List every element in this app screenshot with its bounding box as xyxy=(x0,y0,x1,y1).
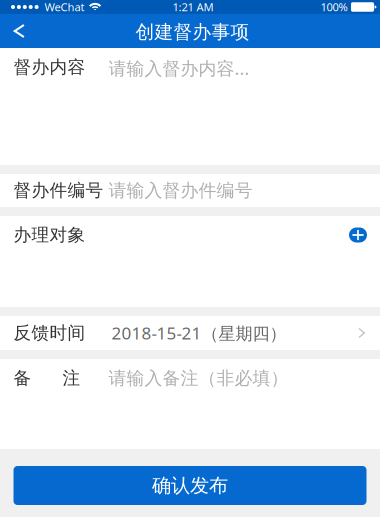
button[interactable]: 确认发布 xyxy=(13,466,366,505)
staticText: WeChat xyxy=(45,0,85,15)
staticText: 备 xyxy=(13,367,31,389)
staticText: 督办件编号 xyxy=(13,179,103,202)
staticText: 2018-15-21（星期四） xyxy=(111,321,286,345)
staticText: 1:21 AM xyxy=(172,0,213,15)
staticText: 督办内容 xyxy=(13,56,85,78)
staticText: 请输入督办件编号 xyxy=(108,179,252,202)
button[interactable]: 反馈时间 xyxy=(0,316,380,350)
staticText: 请输入备注（非必填） xyxy=(108,367,288,389)
staticText: 100% xyxy=(320,0,347,15)
button[interactable]: 添加办理对象 xyxy=(345,223,371,246)
button[interactable]: Back xyxy=(0,14,48,48)
staticText: 创建督办事项 xyxy=(135,20,249,44)
staticText: 确认发布 xyxy=(152,473,228,498)
staticText: 办理对象 xyxy=(13,224,85,246)
staticText: 请输入督办内容... xyxy=(108,56,249,80)
staticText: 反馈时间 xyxy=(13,322,85,344)
staticText: 注 xyxy=(62,367,80,389)
